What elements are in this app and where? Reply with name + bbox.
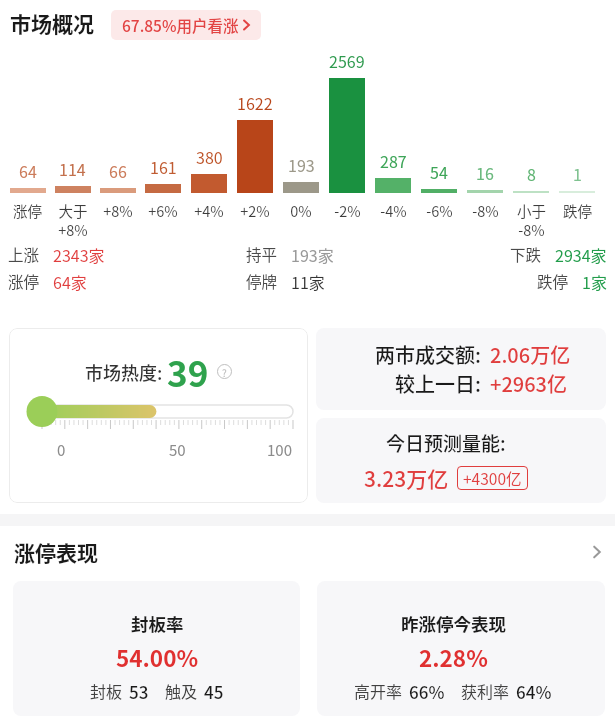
staticText: 11家 <box>291 270 325 293</box>
staticText: 涨停 <box>13 200 42 221</box>
staticText: 市场热度: <box>85 359 163 385</box>
staticText: 下跌 <box>510 243 542 265</box>
staticText: +2% <box>240 200 270 221</box>
staticText: 高开率 <box>354 679 403 702</box>
staticText: 市场概况 <box>10 8 94 38</box>
staticText: 封板率 <box>131 611 184 636</box>
staticText: 39 <box>167 346 209 397</box>
staticText: 64% <box>516 679 552 704</box>
staticText: 66% <box>409 679 445 704</box>
staticText: 1622 <box>237 91 273 114</box>
staticText: 3.23万亿 <box>364 463 449 493</box>
button[interactable]: 67.85%用户看涨 <box>111 10 261 40</box>
staticText: 较上一日: <box>395 369 481 398</box>
button[interactable]: 封板率 <box>13 581 300 716</box>
staticText: 2.28% <box>419 641 488 674</box>
staticText: 涨停表现 <box>14 537 98 567</box>
staticText: 287 <box>380 149 407 172</box>
staticText: 上涨 <box>8 243 40 265</box>
staticText: 封板 <box>90 679 123 702</box>
staticText: -8% <box>472 200 499 221</box>
staticText: 0 <box>57 439 66 461</box>
staticText: 54.00% <box>116 641 199 674</box>
staticText: 两市成交额: <box>375 340 481 369</box>
staticText: 54 <box>430 160 448 183</box>
staticText: -4% <box>380 200 407 221</box>
staticText: -2% <box>334 200 361 221</box>
staticText: 67.85%用户看涨 <box>122 14 239 36</box>
button[interactable]: 市场热度: <box>9 328 308 503</box>
staticText: 64 <box>19 159 37 182</box>
staticText: 114 <box>59 157 86 180</box>
staticText: -6% <box>426 200 453 221</box>
staticText: 64家 <box>53 270 87 293</box>
button[interactable]: 昨涨停今表现 <box>317 581 605 716</box>
staticText: 380 <box>196 145 223 168</box>
button[interactable]: 两市成交额: <box>316 328 606 410</box>
staticText: 161 <box>150 155 177 178</box>
staticText: 2934家 <box>555 243 607 266</box>
staticText: 53 <box>129 679 149 704</box>
staticText: 大于 +8% <box>58 200 88 238</box>
staticText: 2.06万亿 <box>490 340 571 369</box>
staticText: +8% <box>103 200 133 221</box>
staticText: 2569 <box>329 49 365 72</box>
staticText: 193家 <box>291 243 334 266</box>
staticText: 45 <box>204 679 224 704</box>
staticText: 持平 <box>246 243 278 265</box>
staticText: 16 <box>476 161 494 184</box>
staticText: 触及 <box>165 679 198 702</box>
staticText: 停牌 <box>246 270 278 292</box>
staticText: 涨停 <box>8 270 40 292</box>
staticText: +4300亿 <box>463 467 522 489</box>
staticText: 获利率 <box>461 679 510 702</box>
staticText: ? <box>222 365 227 379</box>
staticText: +4% <box>194 200 224 221</box>
staticText: 跌停 <box>537 270 569 292</box>
staticText: 今日预测量能: <box>386 429 506 457</box>
staticText: 100 <box>267 439 292 461</box>
button[interactable]: 涨停表现 <box>14 537 601 567</box>
staticText: 1家 <box>582 270 607 293</box>
staticText: 跌停 <box>563 200 592 221</box>
staticText: 小于 -8% <box>517 200 546 238</box>
button[interactable]: 今日预测量能: <box>316 418 606 503</box>
staticText: 0% <box>290 200 312 221</box>
staticText: 50 <box>169 439 186 461</box>
staticText: 昨涨停今表现 <box>401 611 506 636</box>
staticText: +6% <box>148 200 178 221</box>
staticText: 2343家 <box>53 243 105 266</box>
staticText: +2963亿 <box>490 369 567 398</box>
staticText: 66 <box>109 159 127 182</box>
staticText: 1 <box>573 162 582 185</box>
staticText: 8 <box>527 162 536 185</box>
staticText: 193 <box>288 153 315 176</box>
